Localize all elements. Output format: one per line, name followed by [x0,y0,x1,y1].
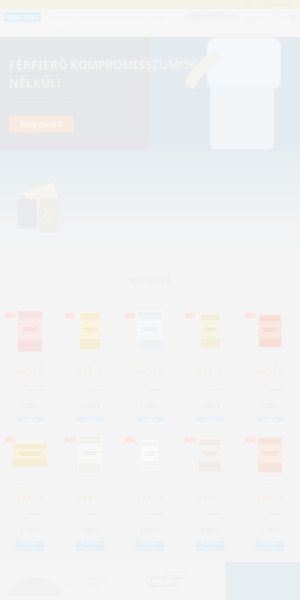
staticText: 3 290 Ft [20,402,39,409]
staticText: Kosárba teszem [262,541,278,551]
staticText: -15% [186,314,193,317]
staticText: -15% [126,438,133,441]
staticText: NÉLKÜL! [9,75,60,91]
staticText: VIRILITAS [6,13,39,21]
staticText: 2 990 Ft [140,402,159,409]
staticText: Kosárba teszem [202,541,218,551]
staticText: Kosárba teszem [82,541,98,551]
staticText: Kosárba teszem [142,541,158,551]
staticText: -15% [246,314,253,317]
button[interactable]: -15% [180,424,240,548]
button[interactable]: -15% [0,424,60,548]
staticText: Kosárba teszem [22,417,38,427]
staticText: -15% [186,438,193,441]
button[interactable]: -15% [180,300,240,424]
button[interactable]: Megnézem [9,116,74,133]
staticText: Kosárba teszem [262,417,278,427]
button[interactable]: VIRILITAS [4,12,41,22]
staticText: 2 190 Ft [260,526,279,533]
staticText: Kosárba teszem [202,417,218,427]
button[interactable]: -15% [60,300,120,424]
staticText: 3 490 Ft [200,526,219,533]
staticText: 2 650 Ft [200,402,219,409]
button[interactable]: -15% [240,300,300,424]
button[interactable]: -15% [240,424,300,548]
staticText: -15% [246,438,253,441]
staticText: FÉRFIERŐ KOMPROMISSZUMOK [9,57,196,73]
staticText: Kosárba teszem [22,541,38,551]
staticText: Kosárba teszem [82,417,98,427]
button[interactable]: -15% [0,300,60,424]
staticText: Megnézem [21,120,56,129]
staticText: -15% [6,438,13,441]
staticText: 1 890 Ft [140,526,159,533]
